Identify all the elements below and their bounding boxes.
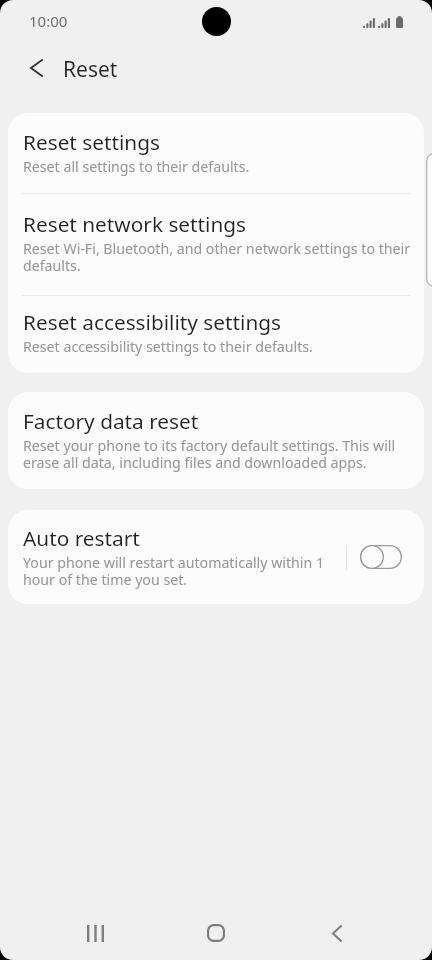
- button[interactable]: Reset network settings: [8, 194, 424, 295]
- staticText: Reset Wi-Fi, Bluetooth, and other networ…: [23, 241, 412, 275]
- button[interactable]: Auto restart: [8, 510, 424, 604]
- button[interactable]: Reset settings: [8, 113, 424, 193]
- staticText: Reset your phone to its factory default …: [23, 438, 412, 472]
- staticText: Reset: [63, 55, 118, 84]
- staticText: Reset accessibility settings to their de…: [23, 339, 313, 356]
- staticText: Reset network settings: [23, 216, 247, 237]
- button[interactable]: Reset accessibility settings: [8, 296, 424, 373]
- button[interactable]: Back: [297, 906, 377, 960]
- button[interactable]: Factory data reset: [8, 392, 424, 489]
- staticText: Factory data reset: [23, 413, 199, 434]
- staticText: Auto restart: [23, 530, 140, 551]
- staticText: Your phone will restart automatically wi…: [23, 555, 336, 589]
- button[interactable]: Recent apps: [55, 906, 135, 960]
- button[interactable]: Auto restart toggle: [359, 544, 403, 570]
- staticText: Reset settings: [23, 134, 160, 155]
- button[interactable]: Back: [16, 49, 56, 89]
- staticText: Reset all settings to their defaults.: [23, 159, 250, 176]
- button[interactable]: Home: [176, 906, 256, 960]
- staticText: 10:00: [29, 11, 68, 31]
- staticText: Reset accessibility settings: [23, 314, 282, 335]
